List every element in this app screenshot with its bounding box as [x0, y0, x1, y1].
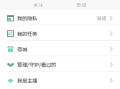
staticText: 商城	[17, 45, 27, 53]
button[interactable]: 管理/守护/看过的	[0, 56, 120, 72]
staticText: 我是主播	[17, 76, 37, 84]
staticText: 管理/守护/看过的	[17, 61, 56, 68]
staticText: 高级	[97, 15, 107, 22]
button[interactable]: 新增	[77, 1, 87, 8]
button[interactable]: 我的任务	[0, 25, 120, 41]
button[interactable]: 关注	[33, 1, 43, 8]
staticText: 我的任务	[17, 30, 37, 37]
button[interactable]: 商城	[0, 41, 120, 56]
button[interactable]: 我的隐私	[0, 10, 120, 25]
staticText: 新增	[77, 1, 87, 8]
staticText: 我的隐私	[17, 14, 37, 22]
button[interactable]: 我是主播	[0, 72, 120, 87]
staticText: 关注	[33, 1, 43, 8]
